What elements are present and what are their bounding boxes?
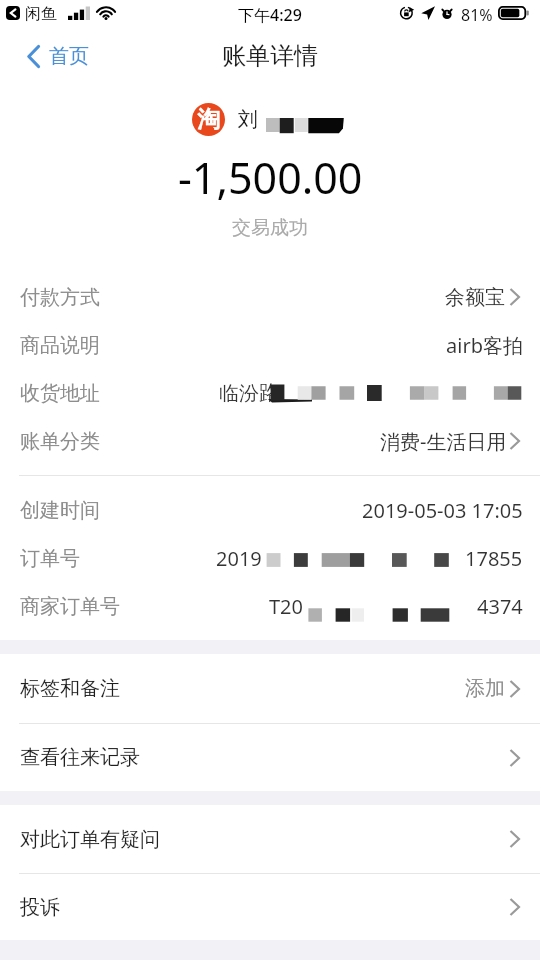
- staticText: 对此订单有疑问: [20, 827, 160, 852]
- staticText: 收货地址: [20, 381, 100, 406]
- button[interactable]: 订单号: [0, 534, 540, 582]
- staticText: 淘: [197, 105, 220, 134]
- button[interactable]: 查看往来记录: [0, 724, 540, 791]
- staticText: 81%: [461, 4, 493, 26]
- staticText: 付款方式: [20, 285, 100, 310]
- button[interactable]: 付款方式: [0, 273, 540, 321]
- staticText: 临汾路: [219, 381, 279, 406]
- staticText: 交易成功: [232, 216, 308, 240]
- staticText: 商家订单号: [20, 594, 120, 619]
- button[interactable]: 账单分类: [0, 417, 540, 465]
- button[interactable]: 商品说明: [0, 321, 540, 369]
- staticText: 首页: [49, 44, 89, 69]
- staticText: 闲鱼: [25, 4, 57, 24]
- button[interactable]: 标签和备注: [0, 654, 540, 723]
- staticText: 投诉: [20, 895, 60, 920]
- staticText: 创建时间: [20, 498, 100, 523]
- staticText: -1,500.00: [178, 148, 363, 207]
- staticText: 商品说明: [20, 333, 100, 358]
- staticText: 下午4:29: [238, 4, 302, 26]
- staticText: 添加: [465, 676, 505, 701]
- staticText: 订单号: [20, 546, 80, 571]
- button[interactable]: Back to 首页: [0, 41, 101, 78]
- staticText: 刘: [238, 107, 258, 132]
- staticText: 2019: [216, 545, 262, 572]
- staticText: airb客拍: [446, 332, 523, 359]
- staticText: 账单分类: [20, 429, 100, 454]
- staticText: 消费-生活日用: [380, 428, 507, 455]
- staticText: 4374: [477, 593, 523, 620]
- button[interactable]: 收货地址: [0, 369, 540, 417]
- staticText: 余额宝: [445, 285, 505, 310]
- button[interactable]: 对此订单有疑问: [0, 805, 540, 873]
- staticText: 17855: [465, 545, 523, 572]
- button[interactable]: 创建时间: [0, 486, 540, 534]
- staticText: 2019-05-03 17:05: [362, 497, 523, 524]
- button[interactable]: 商家订单号: [0, 582, 540, 630]
- staticText: 查看往来记录: [20, 745, 140, 770]
- staticText: T20: [269, 593, 303, 620]
- staticText: 账单详情: [222, 41, 318, 71]
- button[interactable]: 投诉: [0, 874, 540, 940]
- staticText: 标签和备注: [20, 676, 120, 701]
